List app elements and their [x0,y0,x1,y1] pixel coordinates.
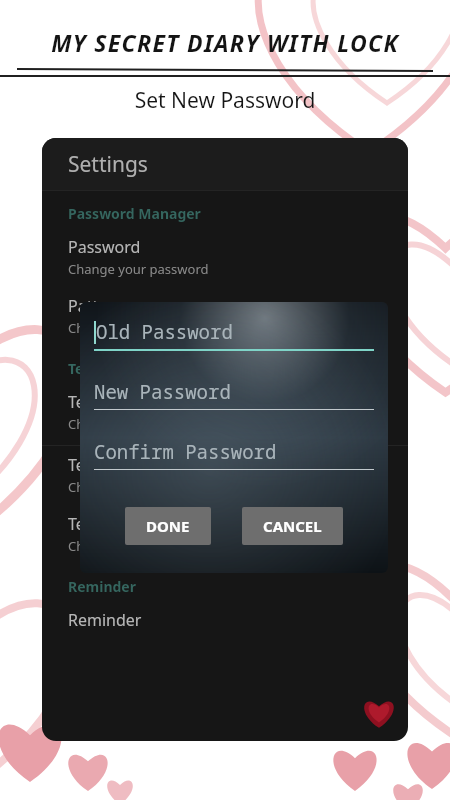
staticText: Old Password [96,319,233,345]
staticText: MY SECRET DIARY WITH LOCK [0,27,450,58]
staticText: Text Color [68,454,144,476]
staticText: DONE [146,516,190,536]
button[interactable]: Reminder [42,564,408,601]
staticText: Change your password [68,260,209,278]
staticText: Settings [68,150,148,179]
button[interactable]: Text Color [42,446,408,505]
staticText: Text [68,359,98,378]
button[interactable]: Text [42,346,408,383]
button[interactable]: Password [42,228,408,287]
staticText: Reminder [68,609,142,631]
staticText: CANCEL [263,516,322,536]
staticText: Text Size [68,391,133,413]
button[interactable]: Pattern [42,287,408,346]
staticText: Reminder [68,577,136,596]
staticText: Pattern [68,295,124,317]
button[interactable]: Text Font [42,505,408,564]
button[interactable]: DONE [125,507,211,545]
other: Favorite [364,699,394,729]
staticText: Choose text Color [68,478,177,496]
staticText: Password [68,236,141,258]
staticText: Text Font [68,513,137,535]
staticText: Password Manager [68,204,201,223]
staticText: Change your pattern [68,319,195,337]
staticText: Choose text Fonts [68,537,178,555]
staticText: Set New Password [0,86,450,115]
button[interactable]: CANCEL [242,507,343,545]
button[interactable]: Password Manager [42,191,408,228]
staticText: Change text Size [68,415,169,433]
staticText: New Password [94,379,231,405]
staticText: Confirm Password [94,439,277,465]
button[interactable]: Reminder [42,601,408,640]
button[interactable]: Text Size [42,383,408,442]
